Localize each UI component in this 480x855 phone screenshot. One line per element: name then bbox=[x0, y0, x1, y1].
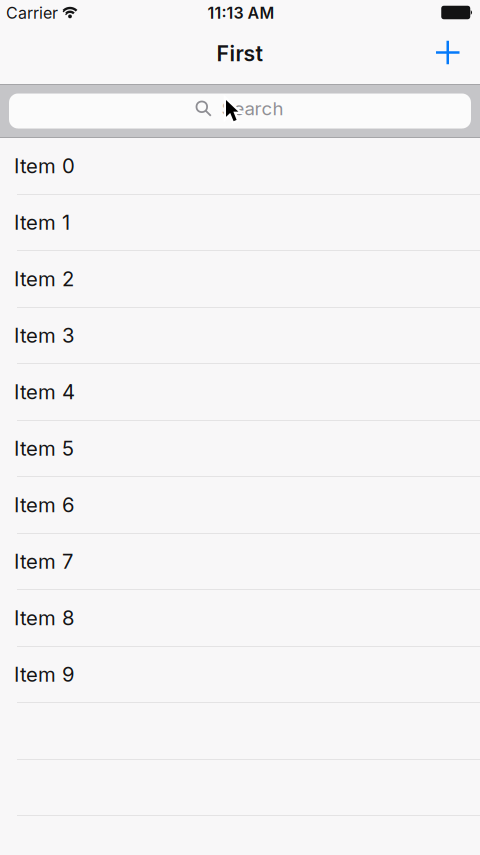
staticText: Item 0 bbox=[14, 154, 75, 178]
staticText: Item 1 bbox=[14, 210, 70, 235]
staticText: Item 6 bbox=[14, 493, 75, 517]
staticText: Item 7 bbox=[14, 549, 73, 574]
button[interactable]: Item 5 bbox=[0, 421, 480, 477]
button[interactable]: Item 8 bbox=[0, 590, 480, 647]
staticText: 11:13 AM bbox=[207, 3, 274, 23]
staticText: First bbox=[216, 41, 263, 66]
button[interactable]: Item 2 bbox=[0, 251, 480, 308]
staticText: Item 8 bbox=[14, 606, 74, 630]
staticText: Item 9 bbox=[14, 662, 75, 687]
staticText: Carrier bbox=[6, 3, 58, 23]
staticText: Item 5 bbox=[14, 436, 74, 461]
button[interactable]: Search bbox=[9, 93, 471, 128]
button[interactable]: Item 7 bbox=[0, 534, 480, 590]
button[interactable]: Add bbox=[425, 30, 469, 74]
button[interactable]: Item 3 bbox=[0, 308, 480, 364]
staticText: Item 2 bbox=[14, 267, 74, 291]
button[interactable]: Item 4 bbox=[0, 364, 480, 421]
button[interactable]: Item 9 bbox=[0, 647, 480, 703]
staticText: Search bbox=[221, 97, 283, 120]
staticText: Item 4 bbox=[14, 380, 75, 404]
staticText: Item 3 bbox=[14, 323, 74, 348]
button[interactable]: Item 6 bbox=[0, 477, 480, 534]
button[interactable]: Item 1 bbox=[0, 195, 480, 251]
button[interactable]: Item 0 bbox=[0, 138, 480, 195]
